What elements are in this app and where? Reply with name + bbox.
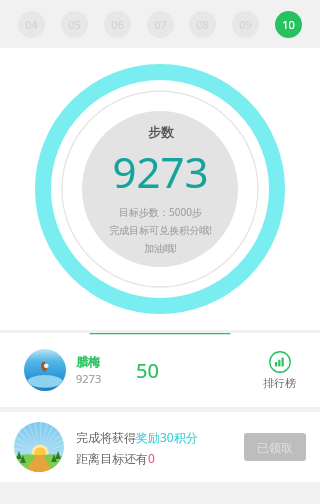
staticText: 目标步数：5000步 (119, 205, 202, 219)
staticText: 加油哦! (144, 241, 177, 255)
staticText: 腊梅 (76, 354, 100, 369)
staticText: 08 (196, 17, 209, 32)
button[interactable]: 09 (232, 11, 259, 38)
staticText: 9273 (76, 371, 102, 386)
button[interactable]: 07 (147, 11, 174, 38)
staticText: 完成将获得奖励30积分 (76, 429, 198, 445)
staticText: 完成目标可兑换积分哦! (109, 223, 212, 237)
staticText: 07 (154, 17, 167, 32)
staticText: 09 (239, 17, 252, 32)
staticText: 9273 (112, 143, 209, 200)
staticText: 距离目标还有0 (76, 450, 155, 466)
button[interactable]: 05 (61, 11, 88, 38)
button[interactable]: 08 (189, 11, 216, 38)
button[interactable]: 10 (275, 11, 302, 38)
staticText: 04 (25, 17, 38, 32)
staticText: 10 (282, 17, 295, 32)
button[interactable]: 已领取 (244, 433, 306, 461)
staticText: 05 (68, 17, 81, 32)
staticText: 步数 (148, 124, 174, 140)
staticText: 已领取 (257, 440, 293, 455)
staticText: 06 (111, 17, 124, 32)
button[interactable]: 06 (104, 11, 131, 38)
staticText: 排行榜 (263, 376, 296, 390)
staticText: 50 (136, 357, 159, 384)
button[interactable]: 04 (18, 11, 45, 38)
button[interactable]: 排行榜 (259, 347, 300, 394)
